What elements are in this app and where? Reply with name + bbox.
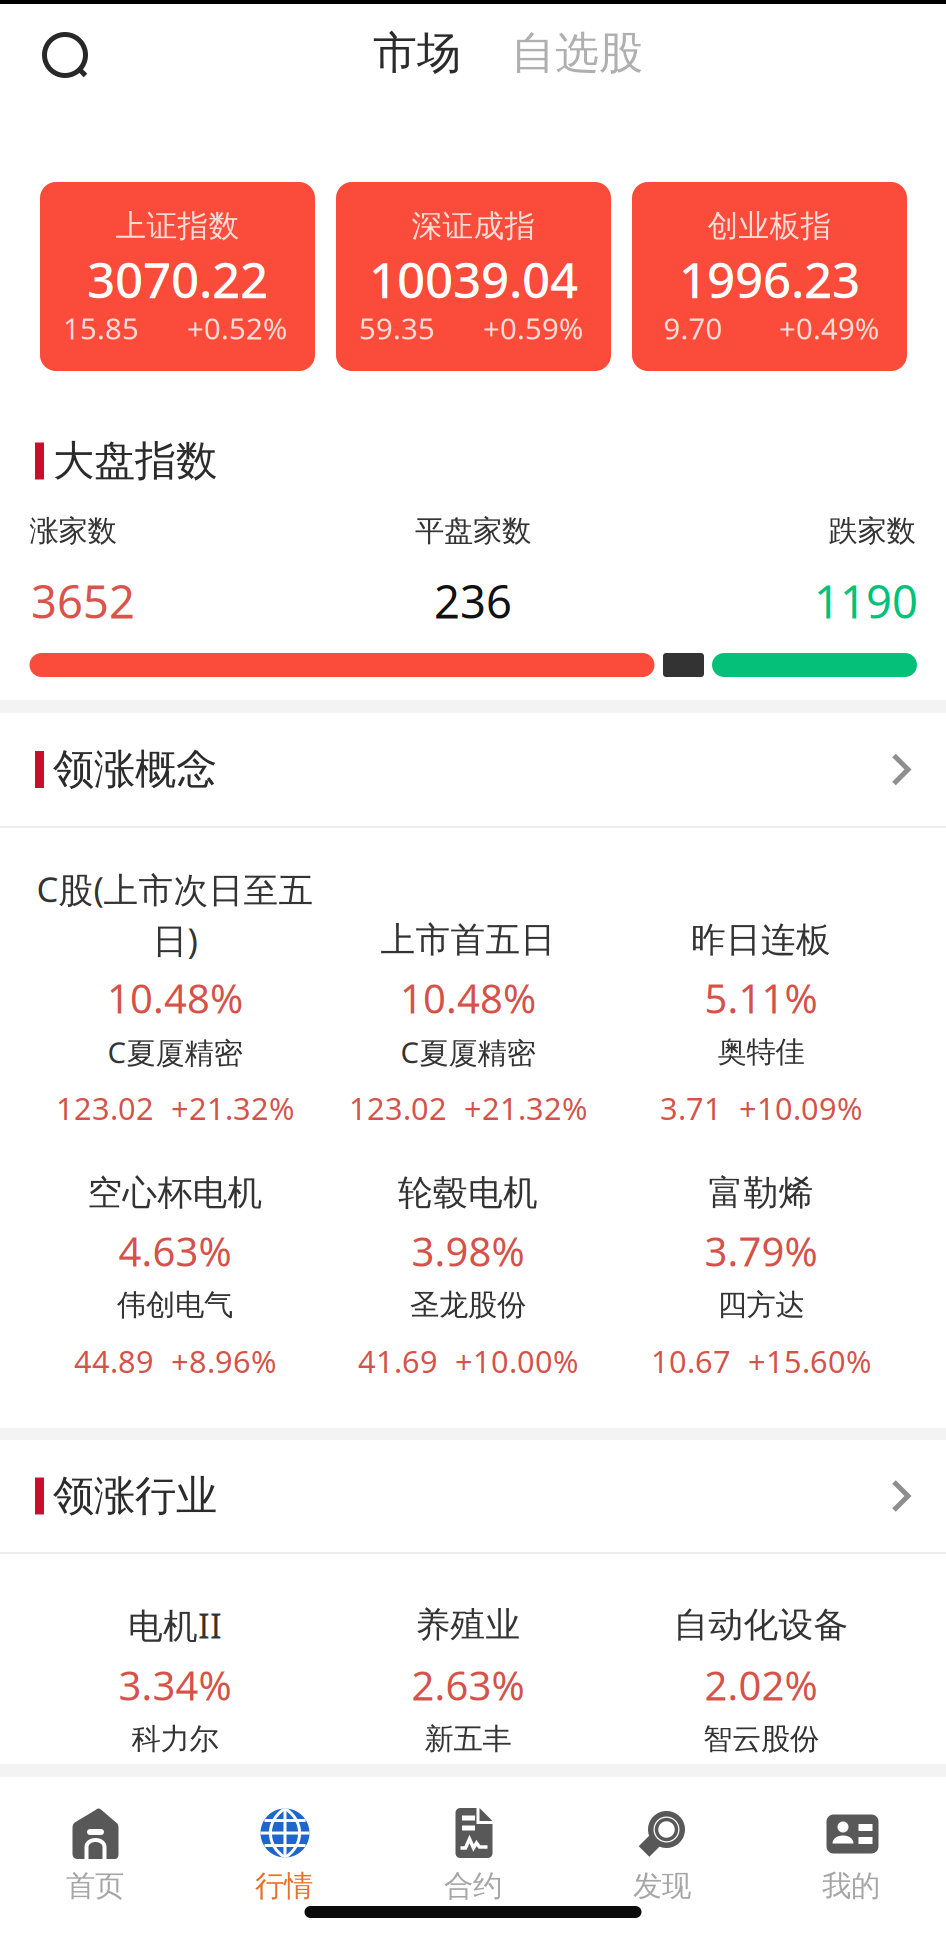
staticText: 自动化设备 [673,1604,848,1646]
button[interactable]: 我的 [756,1790,945,1920]
button[interactable]: C股(上市次日至五 [28,900,321,1148]
staticText: 10.67 [651,1341,731,1381]
button[interactable]: 富勒烯 [614,1153,907,1401]
staticText: 四方达 [717,1287,804,1323]
staticText: 2.02% [704,1658,817,1711]
staticText: 10039.04 [369,246,578,312]
staticText: +10.00% [455,1341,578,1381]
staticText: 10.48% [107,971,243,1024]
staticText: 昨日连板 [691,919,831,961]
button[interactable]: 上市首五日 [321,900,614,1148]
staticText: 日) [152,917,197,963]
staticText: 发现 [633,1868,691,1904]
staticText: 合约 [444,1868,502,1904]
staticText: 1190 [814,571,918,631]
staticText: 行情 [255,1868,313,1904]
staticText: +0.59% [483,308,583,347]
staticText: +15.60% [748,1341,871,1381]
button[interactable]: 自选股 [509,24,645,82]
button[interactable]: 行情 [189,1790,378,1920]
staticText: 伟创电气 [117,1287,233,1323]
staticText: 我的 [822,1868,880,1904]
staticText: 涨家数 [29,513,116,549]
staticText: 3.79% [704,1224,817,1277]
staticText: 市场 [373,26,461,80]
staticText: +10.09% [739,1088,862,1128]
staticText: 富勒烯 [708,1172,813,1214]
staticText: 新五丰 [424,1721,511,1757]
staticText: 智云股份 [703,1721,819,1757]
staticText: +21.32% [171,1088,294,1128]
staticText: 深证成指 [411,207,535,245]
staticText: 平盘家数 [415,513,531,549]
staticText: 1996.23 [679,246,860,312]
staticText: 科力尔 [131,1721,218,1757]
button[interactable]: 深证成指 [336,182,611,371]
staticText: C夏厦精密 [107,1032,242,1071]
staticText: 3.34% [118,1658,231,1711]
button[interactable]: 轮毂电机 [321,1153,614,1401]
staticText: 236 [434,571,512,631]
staticText: 123.02 [56,1088,154,1128]
staticText: 5.11% [704,971,817,1024]
staticText: 跌家数 [828,513,915,549]
button[interactable]: 创业板指 [632,182,907,371]
button[interactable]: 市场 [369,24,464,82]
staticText: C夏厦精密 [400,1032,535,1071]
button[interactable]: 电机II [28,1601,321,1771]
button[interactable]: 合约 [378,1790,567,1920]
staticText: 15.85 [63,308,139,347]
staticText: 奥特佳 [717,1034,804,1070]
staticText: 4.63% [118,1224,231,1277]
staticText: 首页 [66,1868,124,1904]
staticText: 圣龙股份 [410,1287,526,1323]
staticText: 3070.22 [87,246,268,312]
button[interactable]: 首页 [0,1790,189,1920]
staticText: 9.70 [663,308,722,347]
button[interactable]: 发现 [567,1790,756,1920]
button[interactable]: 空心杯电机 [28,1153,321,1401]
staticText: 41.69 [358,1341,438,1381]
staticText: 3652 [31,571,135,631]
staticText: 空心杯电机 [87,1172,262,1214]
staticText: +0.49% [779,308,879,347]
staticText: 轮毂电机 [398,1172,538,1214]
staticText: 领涨概念 [53,744,217,795]
staticText: 59.35 [359,308,435,347]
button[interactable]: 上证指数 [40,182,315,371]
staticText: 10.48% [400,971,536,1024]
staticText: +21.32% [464,1088,587,1128]
staticText: 3.71 [660,1088,722,1128]
staticText: 养殖业 [415,1604,520,1646]
staticText: 自选股 [511,26,643,80]
button[interactable]: 自动化设备 [614,1601,907,1771]
staticText: 2.63% [411,1658,524,1711]
staticText: 44.89 [74,1341,154,1381]
staticText: +8.96% [171,1341,276,1381]
staticText: 领涨行业 [53,1471,217,1521]
staticText: 123.02 [349,1088,447,1128]
staticText: 电机II [128,1602,222,1648]
staticText: +0.52% [187,308,287,347]
staticText: 大盘指数 [53,436,217,486]
button[interactable]: Search [34,24,104,94]
button[interactable]: 昨日连板 [614,900,907,1148]
staticText: 3.98% [411,1224,524,1277]
staticText: 创业板指 [707,207,831,245]
staticText: C股(上市次日至五 [36,866,313,912]
button[interactable]: 养殖业 [321,1601,614,1771]
staticText: 上市首五日 [380,919,555,961]
button[interactable]: 领涨概念 [0,713,946,826]
button[interactable]: 领涨行业 [0,1440,946,1552]
staticText: 上证指数 [115,207,239,245]
